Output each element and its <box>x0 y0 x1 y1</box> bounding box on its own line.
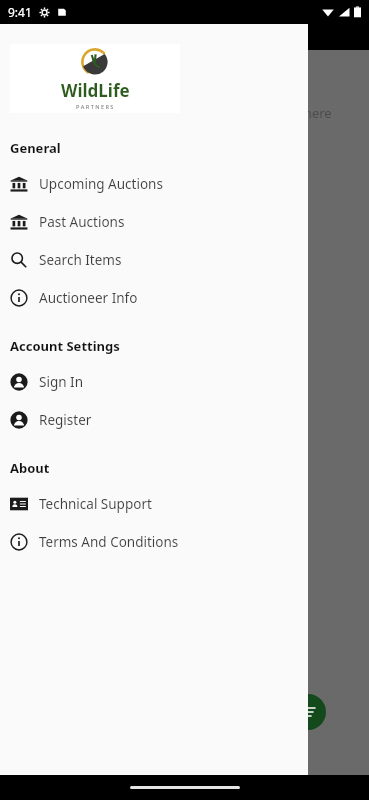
button[interactable]: Auctioneer Info <box>0 279 308 317</box>
staticText: P A R T N E R S <box>76 103 114 110</box>
staticText: Register <box>39 411 92 429</box>
button[interactable]: Register <box>0 401 308 439</box>
button[interactable]: Filter list <box>290 694 326 730</box>
button[interactable]: Upcoming Auctions <box>0 165 308 203</box>
staticText: About <box>10 459 50 477</box>
staticText: Technical Support <box>39 495 152 513</box>
button[interactable]: Search Items <box>0 241 308 279</box>
staticText: Search Items <box>39 251 122 269</box>
button[interactable]: Past Auctions <box>0 203 308 241</box>
button[interactable]: Terms And Conditions <box>0 523 308 561</box>
staticText: Terms And Conditions <box>39 533 179 551</box>
button[interactable]: Technical Support <box>0 485 308 523</box>
staticText: WildLife <box>61 79 130 102</box>
staticText: 9:41 <box>8 4 32 20</box>
staticText: Auctioneer Info <box>39 289 138 307</box>
staticText: No auctions available here <box>170 104 332 122</box>
staticText: Past Auctions <box>39 213 125 231</box>
staticText: Account Settings <box>10 337 120 355</box>
staticText: Upcoming Auctions <box>39 175 163 193</box>
staticText: General <box>10 139 61 157</box>
staticText: Sign In <box>39 373 83 391</box>
button[interactable]: Sign In <box>0 363 308 401</box>
